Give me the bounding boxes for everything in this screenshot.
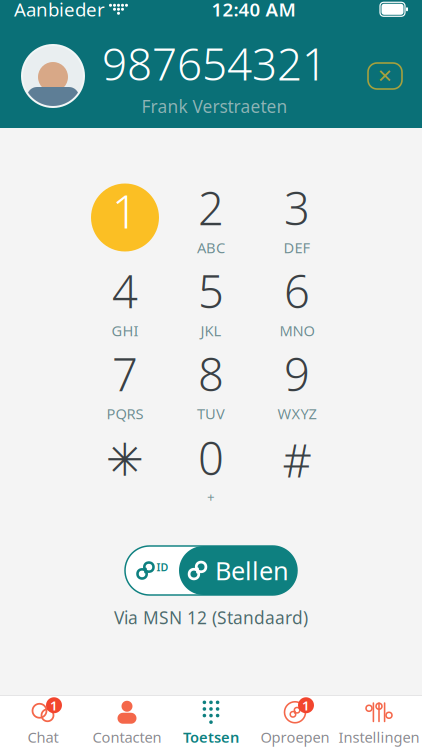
staticText: PQRS xyxy=(106,404,143,423)
button[interactable]: 1 xyxy=(1,697,85,749)
button[interactable]: ID xyxy=(125,546,297,595)
staticText: 2 xyxy=(198,178,224,238)
staticText: DEF xyxy=(283,238,310,257)
staticText: 12:40 AM xyxy=(211,0,295,22)
button[interactable]: 0 xyxy=(168,425,254,508)
staticText: Via MSN 12 (Standaard) xyxy=(114,606,308,629)
button[interactable]: Instellingen xyxy=(337,697,421,749)
staticText: 7 xyxy=(112,344,138,404)
staticText: 1 xyxy=(302,696,310,714)
button[interactable]: 8 xyxy=(168,342,254,425)
staticText: ID xyxy=(156,560,168,574)
staticText: TUV xyxy=(197,404,225,423)
button[interactable]: Contacten xyxy=(85,697,169,749)
button[interactable]: Delete xyxy=(362,56,408,96)
staticText: 5 xyxy=(198,261,224,321)
staticText: # xyxy=(282,430,311,490)
staticText: Chat xyxy=(27,727,58,747)
button[interactable]: # xyxy=(254,425,340,508)
staticText: ✕ xyxy=(377,65,393,87)
staticText: Frank Verstraeten xyxy=(141,95,287,118)
staticText: + xyxy=(207,488,215,505)
staticText: 1 xyxy=(112,181,138,241)
staticText: JKL xyxy=(200,321,221,340)
button[interactable]: 4 xyxy=(82,259,168,342)
staticText: Oproepen xyxy=(260,727,329,747)
staticText: MNO xyxy=(279,321,314,340)
button[interactable]: 9 xyxy=(254,342,340,425)
button[interactable]: 1 xyxy=(253,697,337,749)
staticText: 6 xyxy=(284,261,310,321)
button[interactable]: 5 xyxy=(168,259,254,342)
button[interactable]: 7 xyxy=(82,342,168,425)
button[interactable]: 1 xyxy=(82,176,168,259)
button[interactable]: 3 xyxy=(254,176,340,259)
staticText: WXYZ xyxy=(277,404,316,423)
staticText: ✳ xyxy=(106,434,144,486)
staticText: Contacten xyxy=(92,727,161,747)
button[interactable]: ✳ xyxy=(82,425,168,508)
staticText: Bellen xyxy=(215,554,289,587)
staticText: Instellingen xyxy=(338,727,419,747)
staticText: 8 xyxy=(198,344,224,404)
staticText: Aanbieder xyxy=(14,0,105,22)
staticText: Toetsen xyxy=(183,727,239,747)
button[interactable]: 2 xyxy=(168,176,254,259)
button[interactable]: Toetsen xyxy=(169,697,253,749)
staticText: 1 xyxy=(50,696,58,714)
staticText: 9 xyxy=(284,344,310,404)
staticText: 3 xyxy=(284,178,310,238)
staticText: ABC xyxy=(197,238,225,257)
staticText: 987654321 xyxy=(102,34,327,93)
staticText: GHI xyxy=(111,321,138,340)
staticText: 0 xyxy=(198,427,224,488)
staticText: 4 xyxy=(112,261,138,321)
button[interactable]: 6 xyxy=(254,259,340,342)
